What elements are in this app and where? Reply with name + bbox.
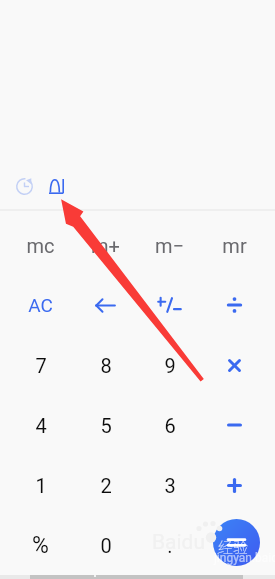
staticText: 1 [35, 474, 47, 497]
staticText: 5 [100, 414, 112, 437]
staticText: m+ [91, 234, 120, 257]
button[interactable]: 1 [8, 455, 73, 515]
button[interactable]: 4 [8, 395, 73, 455]
button[interactable]: mr [202, 215, 267, 275]
button[interactable]: Backspace [73, 275, 138, 335]
button[interactable]: m− [137, 215, 202, 275]
staticText: m− [155, 234, 184, 257]
staticText: AC [28, 294, 53, 316]
button[interactable]: Plus minus sign [137, 275, 202, 335]
button[interactable]: Minus [202, 395, 267, 455]
staticText: Baidu [152, 530, 206, 555]
button[interactable]: Scientific keypad [40, 170, 72, 202]
staticText: 4 [35, 414, 47, 437]
staticText: 经验 [218, 536, 249, 558]
button[interactable]: Multiply [202, 335, 267, 395]
button[interactable]: 5 [73, 395, 138, 455]
staticText: 3 [164, 474, 176, 497]
button[interactable]: History [8, 170, 40, 202]
button[interactable]: Equals [202, 515, 267, 575]
button[interactable]: 3 [137, 455, 202, 515]
button[interactable]: . [137, 515, 202, 575]
button[interactable]: 6 [137, 395, 202, 455]
staticText: 7 [35, 354, 47, 377]
staticText: jingyan.baidu.com [214, 551, 275, 565]
button[interactable]: 8 [73, 335, 138, 395]
button[interactable]: 7 [8, 335, 73, 395]
staticText: mc [26, 234, 55, 257]
button[interactable]: 9 [137, 335, 202, 395]
staticText: % [32, 532, 49, 559]
button[interactable]: 2 [73, 455, 138, 515]
staticText: 2 [100, 474, 112, 497]
button[interactable]: AC [8, 275, 73, 335]
button[interactable]: m+ [73, 215, 138, 275]
staticText: . [167, 534, 173, 557]
button[interactable]: Divide [202, 275, 267, 335]
staticText: 8 [100, 354, 112, 377]
button[interactable]: mc [8, 215, 73, 275]
button[interactable]: 0 [73, 515, 138, 575]
staticText: mr [222, 234, 247, 257]
staticText: 9 [164, 354, 176, 377]
button[interactable]: % [8, 515, 73, 575]
staticText: 0 [100, 534, 112, 557]
button[interactable]: Plus [202, 455, 267, 515]
staticText: 6 [164, 414, 176, 437]
